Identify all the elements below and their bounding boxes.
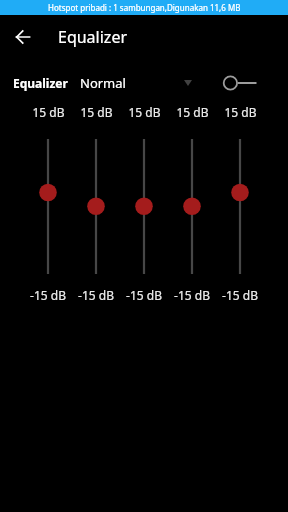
button[interactable]: 14 kHz band level bbox=[216, 128, 264, 285]
staticText: Equalizer bbox=[58, 26, 128, 48]
staticText: -15 dB bbox=[174, 287, 210, 303]
button[interactable]: 3.6 kHz band level bbox=[168, 128, 216, 285]
button[interactable]: Back bbox=[7, 21, 38, 52]
button[interactable]: 60 Hz band level bbox=[24, 128, 72, 285]
button[interactable]: Enable equalizer bbox=[218, 66, 264, 100]
button[interactable]: 910 Hz band level bbox=[120, 128, 168, 285]
staticText: 15 dB bbox=[80, 104, 113, 120]
staticText: 15 dB bbox=[128, 104, 161, 120]
staticText: Hotspot pribadi : 1 sambungan,Digunakan … bbox=[48, 2, 241, 13]
button[interactable]: 230 Hz band level bbox=[72, 128, 120, 285]
staticText: 15 dB bbox=[32, 104, 65, 120]
staticText: 15 dB bbox=[224, 104, 257, 120]
staticText: -15 dB bbox=[78, 287, 114, 303]
button[interactable]: Normal bbox=[80, 66, 192, 100]
staticText: -15 dB bbox=[30, 287, 66, 303]
staticText: 15 dB bbox=[176, 104, 209, 120]
staticText: Normal bbox=[80, 74, 126, 92]
staticText: Equalizer bbox=[13, 75, 68, 91]
staticText: -15 dB bbox=[126, 287, 162, 303]
staticText: -15 dB bbox=[222, 287, 258, 303]
